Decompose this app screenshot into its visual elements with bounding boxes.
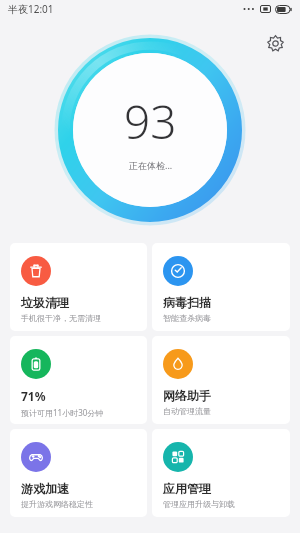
staticText: 正在体检... [129,159,173,171]
staticText: 手机很干净，无需清理 [21,313,101,323]
button[interactable]: 垃圾清理 [10,243,147,331]
button[interactable]: 71% [10,336,147,424]
staticText: 管理应用升级与卸载 [163,499,235,509]
button[interactable]: 病毒扫描 [152,243,290,331]
staticText: 垃圾清理 [21,295,69,310]
staticText: 应用管理 [163,481,211,496]
staticText: 网络助手 [163,388,211,403]
button[interactable]: Settings [260,28,290,58]
staticText: 提升游戏网络稳定性 [21,499,93,509]
staticText: 游戏加速 [21,481,69,496]
staticText: 智能查杀病毒 [163,313,211,323]
staticText: 预计可用11小时30分钟 [21,407,104,418]
staticText: 71% [21,388,46,404]
staticText: 病毒扫描 [163,295,211,310]
staticText: 93 [124,90,177,153]
button[interactable]: 应用管理 [152,429,290,517]
button[interactable]: 游戏加速 [10,429,147,517]
staticText: 半夜12:01 [8,2,54,16]
staticText: 自动管理流量 [163,406,211,416]
button[interactable]: 93 [56,36,244,224]
button[interactable]: 网络助手 [152,336,290,424]
